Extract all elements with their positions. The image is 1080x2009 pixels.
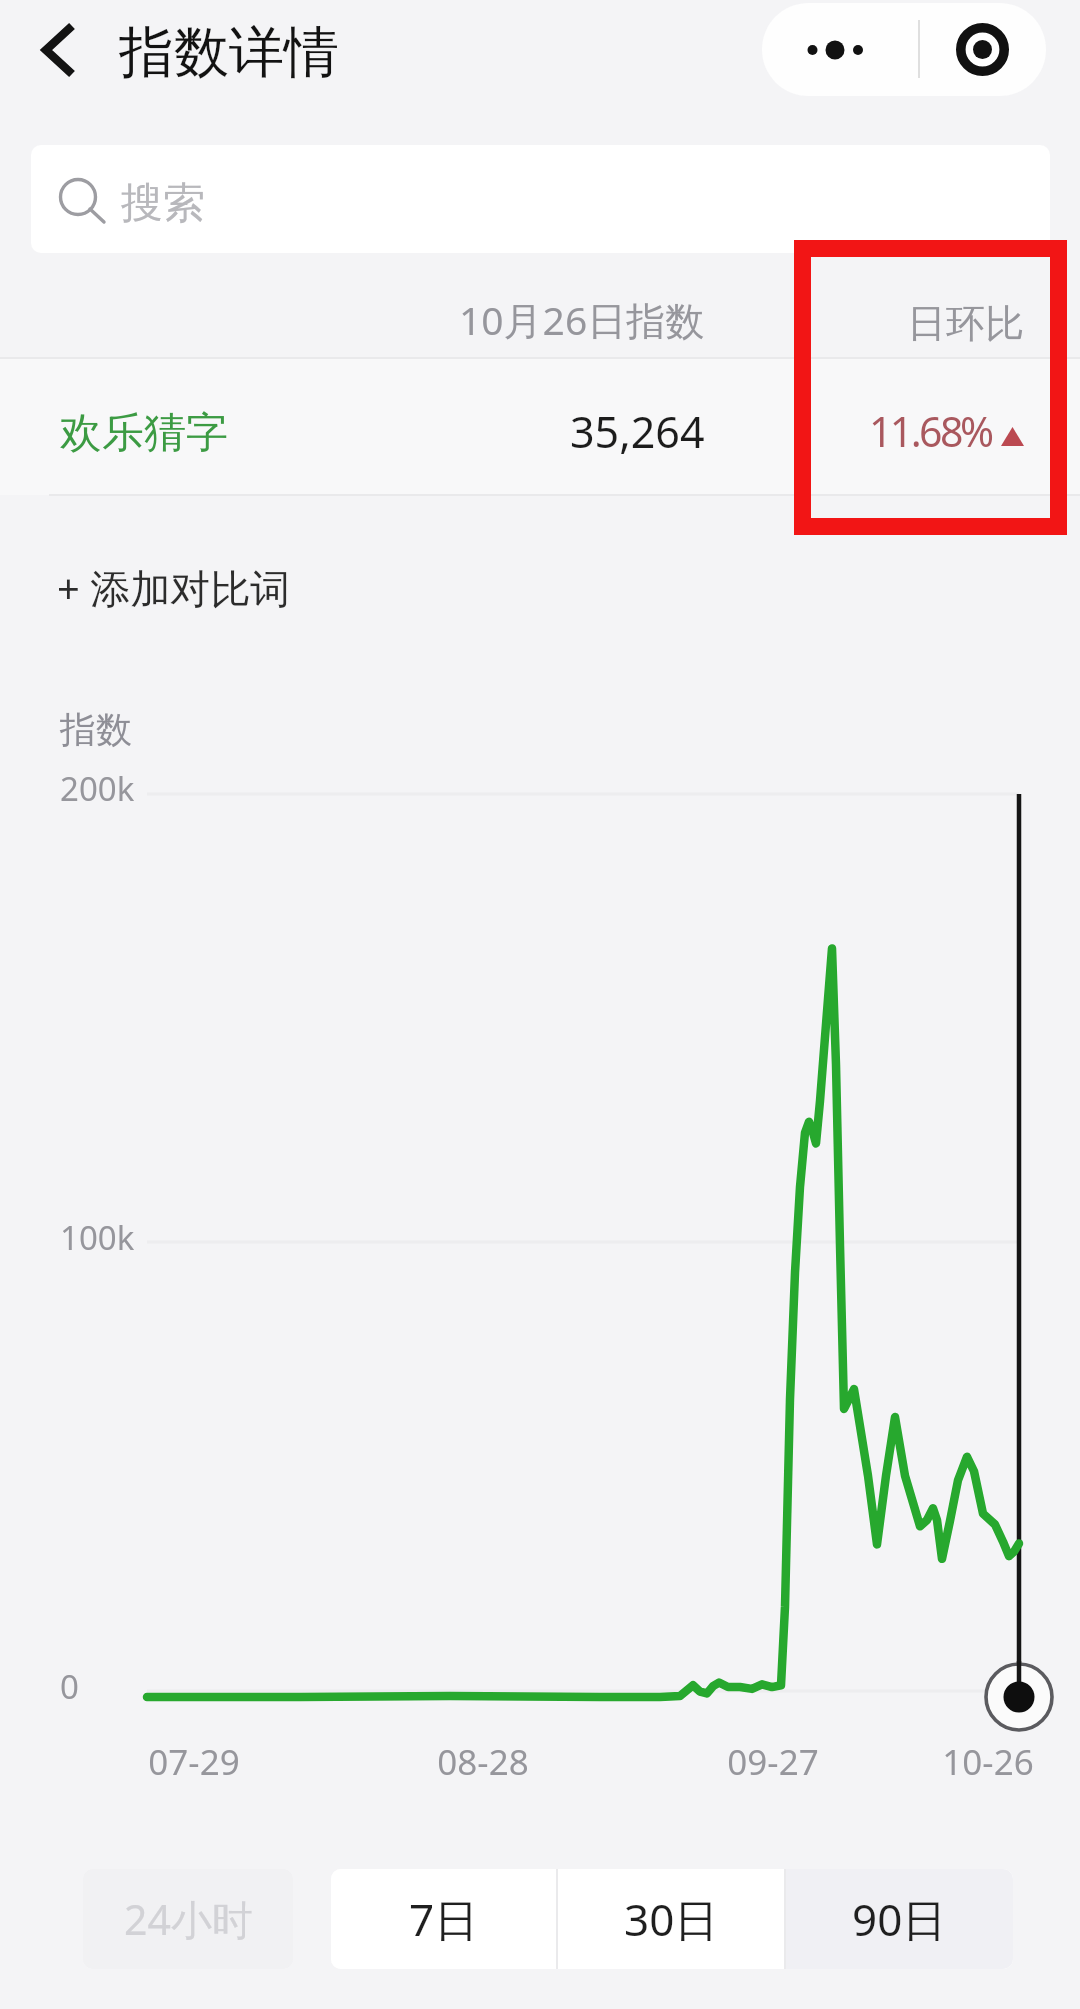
staticText: 200k [60, 766, 135, 811]
button[interactable]: 90日 [786, 1869, 1013, 1969]
staticText: 0 [60, 1664, 79, 1709]
staticText: 11.68 [869, 403, 961, 459]
staticText: 搜索 [121, 177, 205, 230]
button[interactable]: Close mini program [920, 3, 1046, 96]
staticText: 30日 [624, 1889, 719, 1949]
staticText: 指数详情 [119, 18, 339, 87]
button[interactable]: Back [20, 0, 100, 100]
staticText: 08-28 [423, 1738, 543, 1786]
staticText: 07-29 [134, 1738, 254, 1786]
button[interactable]: 30日 [558, 1869, 784, 1969]
button[interactable]: 搜索 [31, 145, 1050, 253]
staticText: 指数 [60, 707, 132, 752]
button[interactable]: 24小时 [83, 1869, 293, 1969]
staticText: + 添加对比词 [57, 560, 291, 615]
staticText: 90日 [852, 1889, 947, 1949]
button[interactable]: + 添加对比词 [0, 530, 1080, 650]
button[interactable]: 7日 [331, 1869, 556, 1969]
staticText: 10-26 [928, 1738, 1048, 1786]
staticText: 35,264 [570, 402, 705, 461]
button[interactable]: More options [762, 3, 904, 96]
staticText: 欢乐猜字 [60, 407, 228, 460]
staticText: % [960, 403, 995, 459]
staticText: 09-27 [713, 1738, 833, 1786]
staticText: 100k [60, 1215, 135, 1260]
staticText: 日环比 [907, 299, 1024, 348]
staticText: 7日 [409, 1889, 479, 1949]
button[interactable]: 欢乐猜字 [0, 359, 1080, 495]
staticText: 24小时 [124, 1891, 253, 1947]
staticText: 10月26日指数 [459, 293, 705, 346]
